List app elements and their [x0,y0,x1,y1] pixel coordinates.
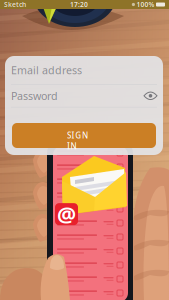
staticText: @ [57,200,76,228]
button[interactable]: Password [5,85,163,107]
button[interactable]: SIGN IN [12,123,156,148]
staticText: 100% [136,0,154,9]
staticText: SIGN IN [67,130,101,141]
staticText: Password [11,89,58,103]
staticText: 17:20 [70,0,88,9]
button[interactable]: Email address [5,56,163,84]
staticText: Email address [11,63,82,77]
staticText: Sketch [4,0,26,9]
